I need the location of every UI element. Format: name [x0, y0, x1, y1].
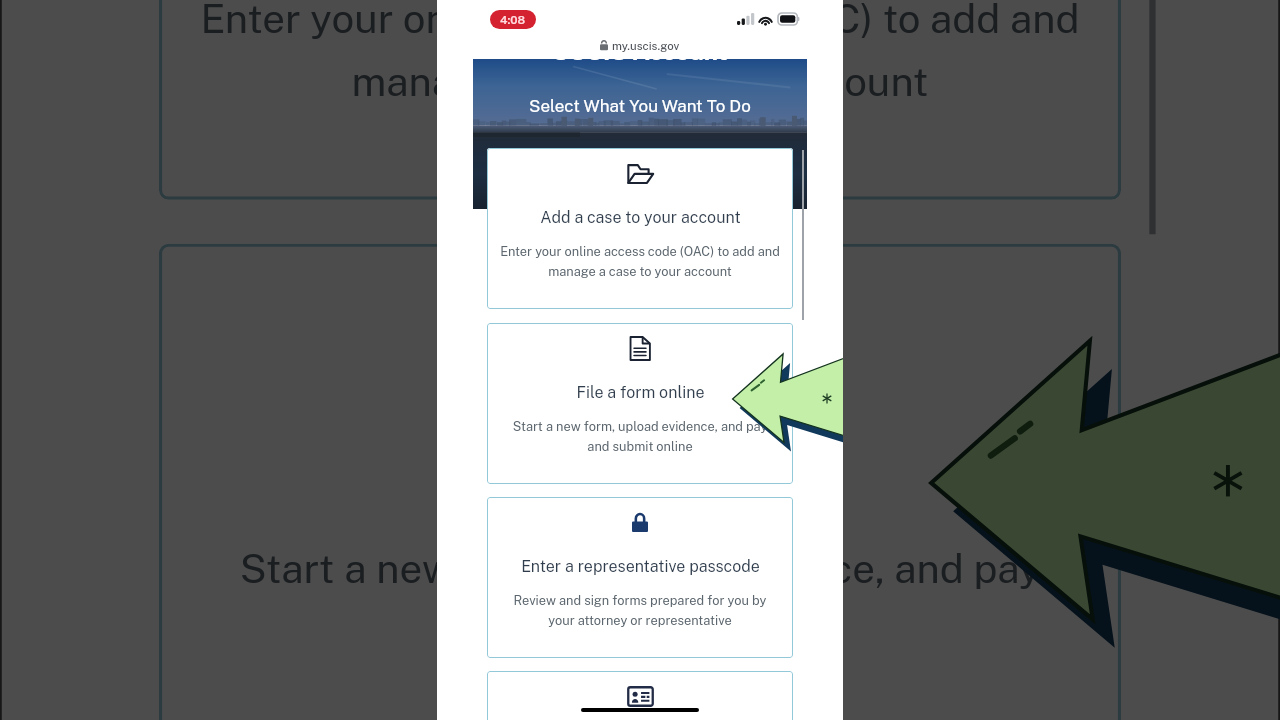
- button[interactable]: Verify your identity: [487, 671, 793, 720]
- staticText: USCIS Account: [552, 59, 728, 65]
- staticText: Start a new form, upload evidence, and p…: [171, 545, 1108, 655]
- staticText: Select What You Want To Do: [529, 96, 751, 116]
- staticText: File a form online: [439, 432, 844, 492]
- button[interactable]: File a form online: [487, 323, 793, 484]
- button[interactable]: Add a case to your account: [159, 0, 1121, 200]
- staticText: Enter your online access code (OAC) to a…: [171, 0, 1108, 105]
- staticText: File a form online: [576, 383, 705, 402]
- staticText: Start a new form, upload evidence, and p…: [491, 419, 789, 454]
- staticText: Add a case to your account: [540, 208, 741, 227]
- staticText: 4:08: [500, 13, 526, 27]
- staticText: Enter your online access code (OAC) to a…: [491, 244, 789, 279]
- staticText: Review and sign forms prepared for you b…: [491, 593, 789, 628]
- staticText: Enter a representative passcode: [521, 557, 760, 576]
- button[interactable]: Add a case to your account: [487, 148, 793, 309]
- button[interactable]: File a form online: [159, 244, 1121, 720]
- button[interactable]: Enter a representative passcode: [487, 497, 793, 658]
- staticText: my.uscis.gov: [612, 39, 680, 52]
